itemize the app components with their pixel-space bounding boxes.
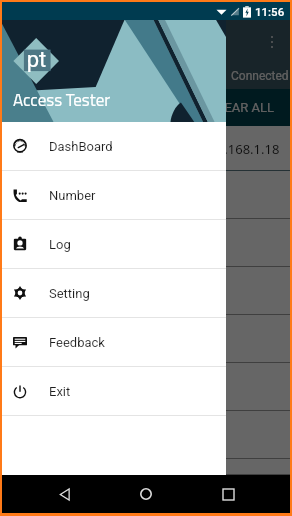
staticText: Setting bbox=[49, 286, 90, 301]
button[interactable]: Log bbox=[2, 220, 226, 269]
staticText: Access Tester bbox=[13, 87, 111, 113]
staticText: Log bbox=[49, 237, 71, 252]
staticText: Number bbox=[49, 188, 96, 203]
button[interactable]: Exit bbox=[2, 367, 226, 416]
button[interactable]: Feedback bbox=[2, 318, 226, 367]
button[interactable]: DashBoard bbox=[2, 122, 226, 171]
button[interactable]: Setting bbox=[2, 269, 226, 318]
staticText: Exit bbox=[49, 384, 71, 399]
staticText: Feedback bbox=[49, 335, 105, 350]
button[interactable]: More options bbox=[271, 36, 274, 52]
staticText: 11:56 bbox=[255, 5, 285, 18]
staticText: 192.168.1.18 bbox=[202, 140, 280, 158]
staticText: Connected bbox=[231, 69, 289, 83]
button[interactable]: Back bbox=[46, 475, 84, 513]
button[interactable]: Home bbox=[127, 475, 165, 513]
staticText: CLEAR ALL bbox=[209, 100, 275, 115]
button[interactable]: Recent apps bbox=[209, 475, 247, 513]
staticText: DashBoard bbox=[49, 139, 113, 154]
button[interactable]: Number bbox=[2, 171, 226, 220]
staticText: pt bbox=[26, 47, 47, 73]
